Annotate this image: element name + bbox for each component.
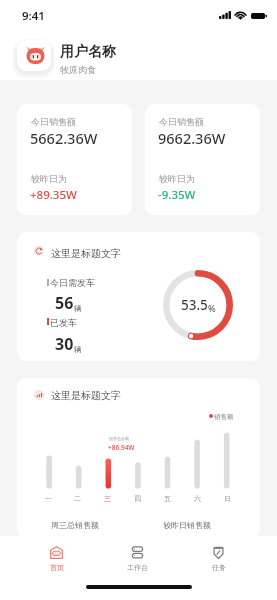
staticText: +86.94W <box>108 443 135 452</box>
staticText: 五 <box>164 494 171 503</box>
staticText: 六 <box>194 494 201 503</box>
staticText: 工作台 <box>127 563 148 572</box>
staticText: 首页 <box>50 563 64 572</box>
staticText: 这里是标题文字 <box>51 247 121 260</box>
staticText: 今日销售额 <box>31 116 76 127</box>
staticText: 30 <box>55 333 74 355</box>
staticText: 辆 <box>74 304 82 313</box>
staticText: 5662.36W <box>30 128 98 148</box>
staticText: 辆 <box>74 345 82 354</box>
button[interactable]: 这里是标题文字 <box>17 232 260 361</box>
staticText: 三 <box>104 494 111 503</box>
staticText: 56 <box>55 292 74 314</box>
staticText: 销售额 <box>214 413 234 421</box>
staticText: 销售总金额 <box>109 436 129 441</box>
staticText: 53.5 <box>181 296 208 314</box>
staticText: 日 <box>224 494 231 503</box>
button[interactable]: 这里是标题文字 <box>17 378 260 538</box>
staticText: +89.35W <box>30 187 77 203</box>
staticText: 较昨日为 <box>159 173 195 184</box>
staticText: % <box>208 302 216 314</box>
button[interactable]: 首页 <box>16 536 97 576</box>
staticText: 四 <box>134 494 141 503</box>
staticText: 9:41 <box>22 8 45 24</box>
staticText: 较昨日为 <box>31 173 67 184</box>
staticText: 一 <box>45 494 52 503</box>
staticText: -9.35W <box>158 187 196 203</box>
staticText: 牧原肉食 <box>60 64 96 75</box>
staticText: 二 <box>74 494 81 503</box>
staticText: 较昨日销售额 <box>163 520 211 530</box>
staticText: 用户名称 <box>60 43 116 61</box>
staticText: 已发车 <box>50 317 77 328</box>
staticText: 9662.36W <box>158 128 226 148</box>
staticText: 任务 <box>212 563 226 572</box>
button[interactable]: 用户名称 <box>17 38 260 74</box>
staticText: 周三总销售额 <box>51 520 99 530</box>
button[interactable]: 工作台 <box>97 536 178 576</box>
staticText: 这里是标题文字 <box>51 389 121 402</box>
button[interactable]: 任务 <box>178 536 259 576</box>
button[interactable]: 今日销售额 <box>145 104 260 215</box>
button[interactable]: 今日销售额 <box>17 104 132 215</box>
staticText: 今日销售额 <box>159 116 204 127</box>
staticText: 今日需发车 <box>50 277 95 288</box>
